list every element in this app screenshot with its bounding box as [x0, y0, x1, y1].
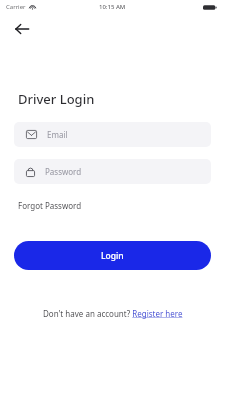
staticText: 10:15 AM [99, 3, 126, 11]
staticText: Login [101, 250, 124, 262]
staticText: Email [47, 129, 68, 140]
staticText: Driver Login [18, 90, 95, 108]
button[interactable]: Email [14, 122, 211, 147]
button[interactable]: Don't have an account? Register here [43, 308, 183, 319]
button[interactable]: Forgot Password [18, 198, 82, 213]
button[interactable]: Password [14, 159, 211, 184]
button[interactable]: Login [14, 241, 211, 270]
button[interactable]: Back [8, 15, 36, 43]
staticText: Don't have an account? Register here [43, 308, 183, 319]
staticText: Carrier [6, 3, 26, 11]
staticText: Password [45, 166, 82, 177]
staticText: Forgot Password [18, 200, 82, 211]
